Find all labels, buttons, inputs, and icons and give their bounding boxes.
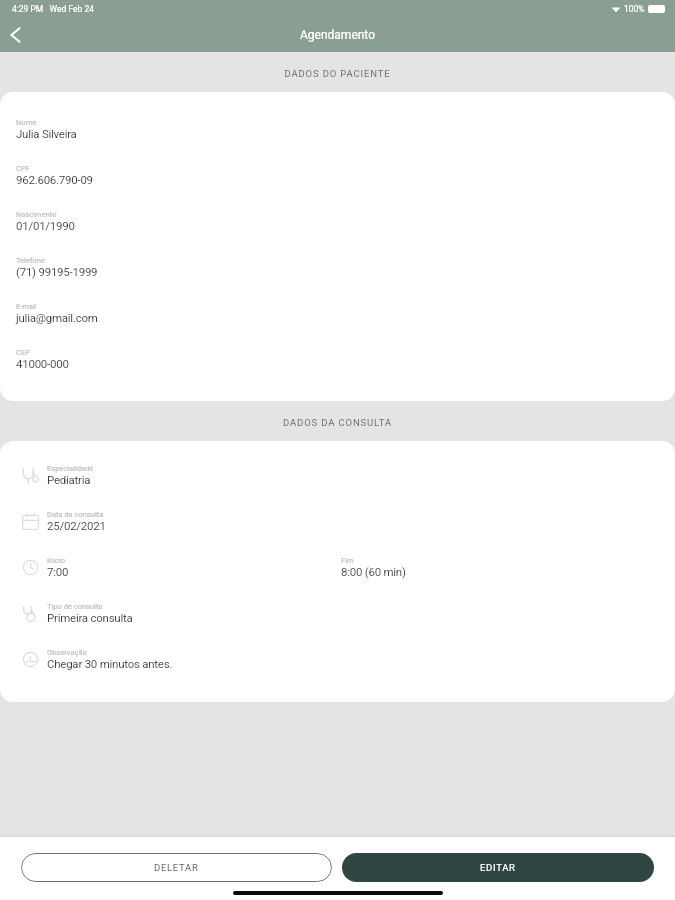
staticText: 7:00 bbox=[47, 565, 69, 578]
button[interactable]: Back bbox=[0, 20, 30, 50]
staticText: Tipo de consulta bbox=[47, 602, 103, 611]
staticText: Nome bbox=[16, 118, 37, 127]
staticText: Data da consulta bbox=[47, 510, 104, 519]
staticText: 100% bbox=[624, 4, 645, 14]
staticText: DADOS DA CONSULTA bbox=[283, 417, 392, 428]
staticText: Fim bbox=[341, 556, 354, 565]
staticText: 41000-000 bbox=[16, 357, 69, 370]
staticText: DADOS DO PACIENTE bbox=[284, 68, 391, 79]
staticText: Chegar 30 minutos antes. bbox=[47, 657, 173, 670]
staticText: Primeira consulta bbox=[47, 611, 133, 624]
staticText: 962.606.790-09 bbox=[16, 173, 93, 186]
button[interactable]: EDITAR bbox=[342, 853, 654, 882]
staticText: 4:29 PM Wed Feb 24 bbox=[12, 4, 94, 14]
staticText: Observação bbox=[47, 648, 87, 657]
staticText: CEP bbox=[16, 348, 30, 357]
button[interactable]: DELETAR bbox=[21, 853, 332, 882]
staticText: 25/02/2021 bbox=[47, 519, 106, 532]
staticText: E-mail bbox=[16, 302, 37, 311]
staticText: (71) 99195-1999 bbox=[16, 265, 98, 278]
staticText: Pediatria bbox=[47, 473, 91, 486]
staticText: Especialidade bbox=[47, 464, 94, 473]
staticText: Julia Silveira bbox=[16, 127, 77, 140]
staticText: EDITAR bbox=[480, 862, 516, 873]
staticText: Agendamento bbox=[300, 28, 376, 42]
staticText: DELETAR bbox=[154, 862, 199, 873]
staticText: CPF bbox=[16, 164, 30, 173]
staticText: 01/01/1990 bbox=[16, 219, 75, 232]
staticText: Telefone bbox=[16, 256, 45, 265]
staticText: Nascimento bbox=[16, 210, 57, 219]
staticText: Início bbox=[47, 556, 66, 565]
staticText: julia@gmail.com bbox=[16, 311, 98, 324]
staticText: 8:00 (60 min) bbox=[341, 565, 406, 578]
